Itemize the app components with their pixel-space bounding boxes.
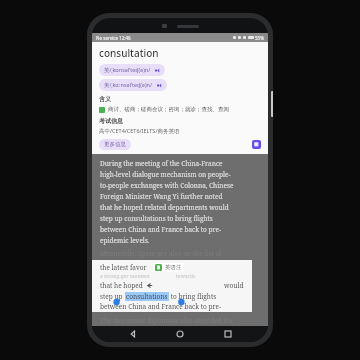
button[interactable]: Back (126, 327, 140, 341)
staticText: epidemic levels. (100, 236, 260, 245)
staticText: the latest favor (100, 263, 147, 272)
staticText: 高中/CET4/CET6/IELTS/商务英语 (99, 127, 180, 135)
staticText: The two senior diplomats also attended t… (100, 316, 260, 325)
staticText: 美/ˌkɑːnsəlˈteɪʃ(ə)n/ (104, 81, 153, 89)
staticText: 考试信息 (99, 117, 123, 125)
staticText: 英/ˌkɒnsəlˈteɪʃ(ə)n/ (104, 66, 151, 74)
button[interactable]: 英/ˌkɒnsəlˈteɪʃ(ə)n/ (99, 64, 165, 76)
staticText: between China and France back to pre- (100, 302, 222, 311)
staticText: high-level dialogue mechanism on people- (100, 170, 260, 179)
staticText: No service 12:46 (96, 35, 131, 41)
staticText: 商讨、磋商；磋商会议；咨询；就诊；查找、查阅 (108, 106, 229, 113)
button[interactable]: consultations (125, 292, 169, 301)
button[interactable]: Back (145, 281, 154, 290)
button[interactable]: Home (173, 327, 187, 341)
staticText: step up (100, 292, 125, 301)
staticText: consultations (126, 292, 168, 301)
staticText: step up consultations to bring flights (100, 214, 260, 223)
staticText: consultation (99, 46, 159, 60)
staticText: 更多信息 (104, 141, 126, 148)
staticText: 含义 (99, 95, 111, 103)
staticText: a strong-ger moment towards (100, 273, 196, 280)
button[interactable]: 英语注 (153, 263, 184, 272)
staticText: Meanwhile, Spain are also on the list of (100, 249, 260, 258)
button[interactable]: Recent apps (221, 327, 235, 341)
other: Play pronunciation (157, 83, 162, 88)
button[interactable]: 美/ˌkɑːnsəlˈteɪʃ(ə)n/ (99, 79, 167, 91)
other: Play pronunciation (155, 68, 160, 73)
staticText: to-people exchanges with Colonna, Chines… (100, 181, 260, 190)
staticText: Foreign Minister Wang Yi further noted (100, 192, 260, 201)
staticText: would (224, 281, 244, 290)
staticText: between China and France back to pre- (100, 225, 260, 234)
button[interactable]: 更多信息 (99, 139, 131, 150)
staticText: During the meeting of the China-France (100, 159, 260, 168)
staticText: that he hoped (100, 281, 145, 290)
staticText: 55% (255, 35, 264, 41)
staticText: that he hoped related departments would (100, 203, 260, 212)
button[interactable]: Copy (252, 140, 261, 149)
staticText: 英语注 (165, 264, 182, 271)
staticText: to bring flights (169, 292, 217, 301)
